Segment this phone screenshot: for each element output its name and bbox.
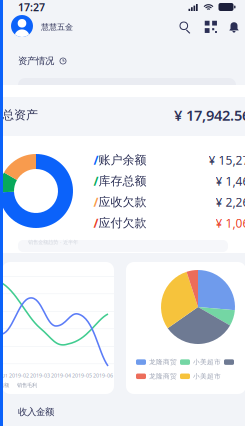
- staticText: 慧慧五金: [41, 22, 73, 32]
- staticText: 应收欠款: [98, 195, 146, 209]
- staticText: 龙隆商贸: [149, 372, 177, 380]
- staticText: 2019-06: [93, 372, 113, 379]
- staticText: ¥ 15,275.68: [208, 152, 245, 168]
- staticText: ¥ 1,466.32: [215, 173, 245, 189]
- staticText: /: [93, 152, 98, 168]
- staticText: 17:27: [18, 0, 45, 14]
- staticText: 销售额: [0, 382, 9, 389]
- staticText: /: [93, 215, 98, 231]
- staticText: 龙隆商贸: [149, 358, 177, 366]
- staticText: /: [93, 173, 98, 189]
- staticText: ¥ 2,263.00: [215, 194, 245, 210]
- staticText: 2019-04: [51, 372, 71, 379]
- staticText: 2019-03: [30, 372, 50, 379]
- staticText: ¥ 17,942.56: [174, 105, 245, 125]
- staticText: 总资产: [2, 108, 38, 122]
- staticText: 收入金额: [18, 406, 54, 418]
- staticText: 小美超市: [193, 372, 221, 380]
- staticText: ¥ 1,063.10: [215, 215, 245, 231]
- button[interactable]: 慧慧五金: [41, 17, 75, 37]
- staticText: 销售金额趋势 · 近半年: [28, 238, 78, 246]
- staticText: 资产情况: [18, 55, 54, 67]
- staticText: 小美超市: [193, 358, 221, 366]
- button[interactable]: 通知: [223, 16, 245, 38]
- staticText: 应付欠款: [98, 216, 146, 230]
- staticText: 销售毛利: [17, 382, 37, 389]
- staticText: 账户余额: [98, 153, 146, 167]
- staticText: 2019-01: [0, 372, 8, 379]
- staticText: 2019-02: [9, 372, 29, 379]
- staticText: /: [93, 194, 98, 210]
- button[interactable]: 搜索: [174, 16, 196, 38]
- button[interactable]: 扫一扫: [200, 16, 222, 38]
- staticText: 库存总额: [98, 174, 146, 188]
- staticText: 2019-05: [72, 372, 92, 379]
